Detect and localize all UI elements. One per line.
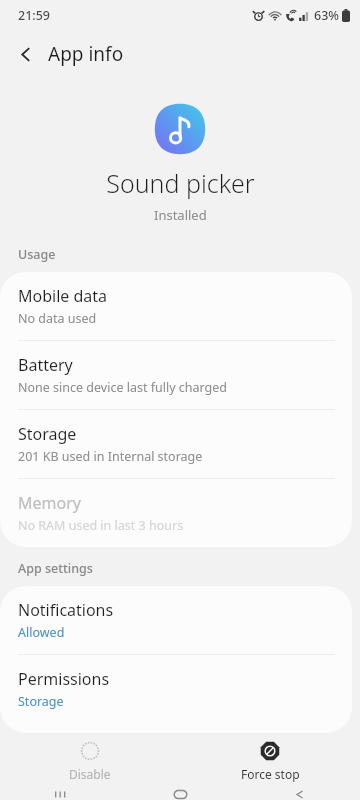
button[interactable]: Home xyxy=(120,789,240,800)
staticText: Battery xyxy=(18,354,73,376)
button[interactable]: Back xyxy=(240,789,360,800)
button[interactable]: Permissions xyxy=(0,655,352,723)
staticText: Force stop xyxy=(241,766,300,782)
staticText: No data used xyxy=(18,310,97,327)
button: Disable xyxy=(0,733,180,789)
button[interactable]: Mobile data xyxy=(0,272,352,341)
staticText: None since device last fully charged xyxy=(18,379,227,396)
staticText: Storage xyxy=(18,423,77,445)
staticText: No RAM used in last 3 hours xyxy=(18,517,184,534)
staticText: 63% xyxy=(314,7,339,24)
staticText: Notifications xyxy=(18,599,114,621)
staticText: Installed xyxy=(154,206,207,224)
button[interactable]: Storage xyxy=(0,410,352,479)
staticText: App info xyxy=(48,41,124,67)
staticText: Sound picker xyxy=(106,166,255,200)
button: Memory xyxy=(0,479,352,547)
button[interactable]: Battery xyxy=(0,341,352,410)
staticText: Disable xyxy=(69,766,111,782)
staticText: Memory xyxy=(18,492,81,514)
button[interactable]: Back xyxy=(9,37,43,71)
staticText: App settings xyxy=(18,560,93,577)
staticText: 201 KB used in Internal storage xyxy=(18,448,203,465)
staticText: Storage xyxy=(18,693,64,710)
staticText: Usage xyxy=(18,246,56,263)
button[interactable]: Force stop xyxy=(180,733,360,789)
staticText: 21:59 xyxy=(18,7,51,24)
staticText: Permissions xyxy=(18,668,110,690)
button[interactable]: Notifications xyxy=(0,586,352,655)
staticText: Mobile data xyxy=(18,285,108,307)
button[interactable]: Recents xyxy=(0,789,120,800)
staticText: Allowed xyxy=(18,624,65,641)
